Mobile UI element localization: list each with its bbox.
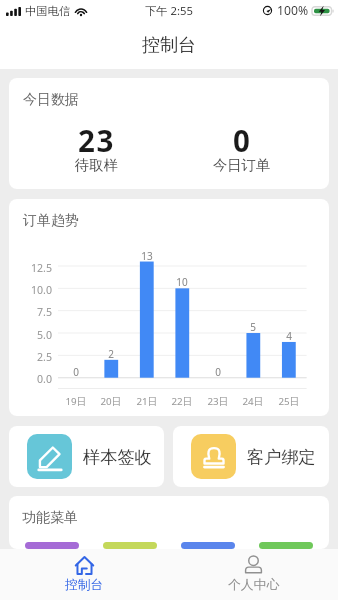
button[interactable]: 客户绑定 [173,426,329,487]
staticText: 5.0 [19,328,52,342]
staticText: 0 [233,120,252,160]
button[interactable]: 样本签收 [9,426,164,487]
staticText: 23 [78,120,115,160]
staticText: 21日 [129,395,165,408]
staticText: 10 [164,275,200,289]
staticText: 5 [235,320,271,334]
staticText: 订单趋势 [23,212,79,230]
staticText: 24日 [235,395,271,408]
staticText: 4 [271,329,307,343]
staticText: 今日数据 [23,91,79,109]
staticText: 2 [93,347,129,361]
staticText: 控制台 [142,34,196,57]
button[interactable] [25,542,79,549]
staticText: 样本签收 [83,446,152,468]
staticText: 12.5 [19,261,52,275]
staticText: 13 [129,249,165,263]
button[interactable] [103,542,157,549]
staticText: 2.5 [19,350,52,364]
staticText: 客户绑定 [247,446,316,468]
staticText: 10.0 [19,283,52,297]
staticText: 0 [58,365,94,379]
staticText: 中国电信 [25,4,71,18]
staticText: 待取样 [75,156,118,174]
staticText: 25日 [271,395,307,408]
staticText: 22日 [164,395,200,408]
staticText: 23日 [200,395,236,408]
staticText: 100% [277,2,309,19]
staticText: 控制台 [65,577,104,593]
staticText: 7.5 [19,305,52,319]
button[interactable] [259,542,313,549]
button[interactable]: 控制台 [0,549,169,600]
staticText: 20日 [93,395,129,408]
staticText: 19日 [58,395,94,408]
button[interactable] [181,542,235,549]
staticText: 0.0 [19,372,52,386]
staticText: 功能菜单 [22,509,78,527]
staticText: 个人中心 [228,577,280,593]
staticText: 下午 2:55 [145,3,193,18]
staticText: 今日订单 [213,156,271,174]
button[interactable]: 个人中心 [169,549,338,600]
staticText: 0 [200,365,236,379]
